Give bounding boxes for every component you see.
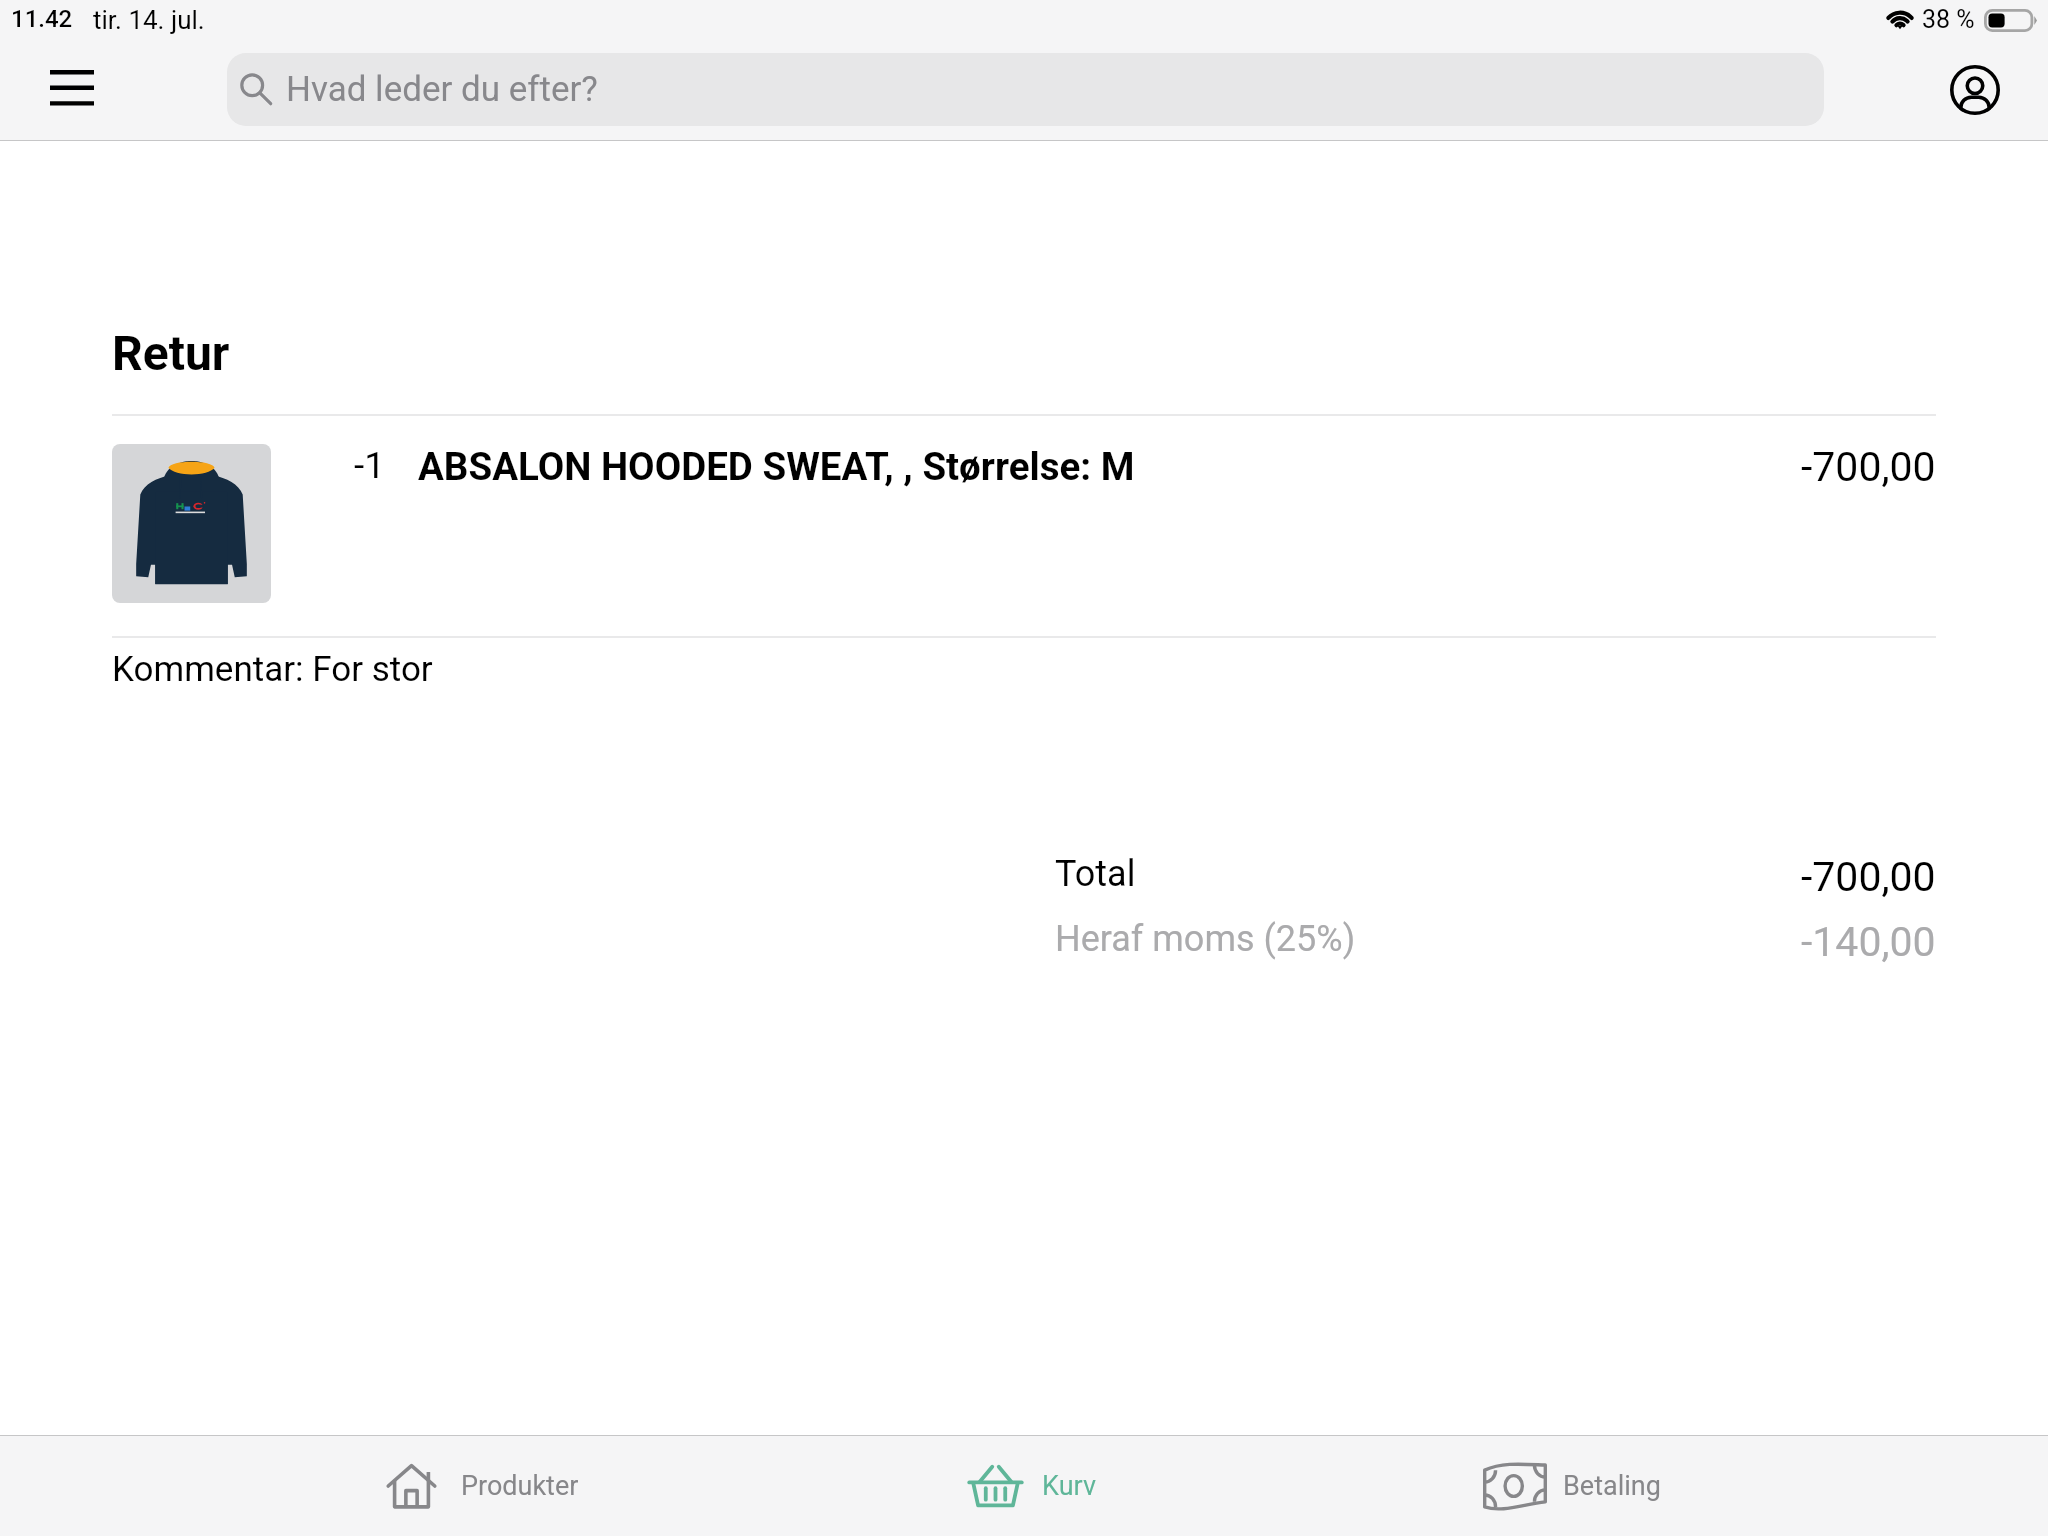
staticText: Heraf moms (25%): [1055, 918, 1356, 960]
staticText: Kurv: [1042, 1470, 1096, 1502]
staticText: -140,00: [1801, 918, 1936, 966]
staticText: Betaling: [1563, 1470, 1661, 1502]
button[interactable]: Betaling: [1483, 1436, 1661, 1536]
staticText: tir. 14. jul.: [93, 5, 205, 35]
staticText: Retur: [112, 325, 230, 381]
staticText: Kommentar: For stor: [112, 649, 433, 690]
staticText: 11.42: [11, 5, 73, 33]
staticText: -700,00: [1801, 443, 1936, 491]
staticText: Produkter: [461, 1470, 579, 1502]
staticText: Total: [1055, 853, 1136, 895]
button[interactable]: Kurv: [966, 1436, 1096, 1536]
button[interactable]: Menu: [50, 70, 94, 107]
staticText: -700,00: [1801, 853, 1936, 901]
button[interactable]: Produkter: [387, 1436, 579, 1536]
button[interactable]: Account: [1950, 65, 2000, 115]
staticText: ABSALON HOODED SWEAT, , Størrelse: M: [418, 444, 1135, 489]
button[interactable]: Hvad leder du efter?: [227, 53, 1824, 126]
staticText: 38 %: [1922, 5, 1975, 34]
staticText: -1: [354, 444, 386, 487]
staticText: Hvad leder du efter?: [286, 69, 598, 110]
